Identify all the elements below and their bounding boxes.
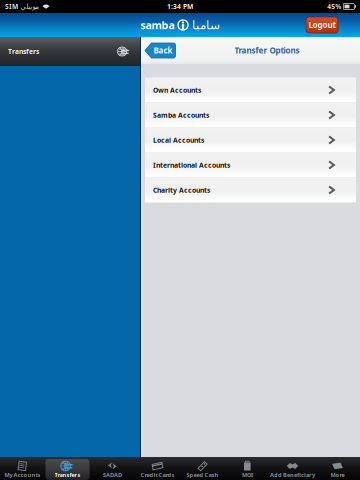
staticText: Transfers — [54, 471, 80, 478]
button[interactable]: MOI — [225, 457, 270, 480]
button[interactable]: Samba Accounts — [145, 102, 356, 127]
button[interactable]: Add Beneficiary — [270, 457, 315, 480]
staticText: Charity Accounts — [153, 185, 210, 195]
staticText: My Accounts — [4, 471, 40, 478]
staticText: 45% — [327, 2, 341, 11]
button[interactable]: More — [315, 457, 360, 480]
button[interactable]: International Accounts — [145, 152, 356, 177]
staticText: موبيلي — [20, 3, 39, 10]
button[interactable]: Transfers — [45, 457, 90, 480]
button[interactable]: Back — [144, 42, 175, 58]
staticText: Credit Cards — [140, 471, 174, 478]
button[interactable]: Charity Accounts — [145, 177, 356, 202]
staticText: Back — [153, 45, 172, 56]
button[interactable]: Local Accounts — [145, 127, 356, 152]
staticText: More — [330, 471, 344, 478]
staticText: سامبا — [191, 18, 219, 32]
button[interactable]: Credit Cards — [135, 457, 180, 480]
button[interactable]: My Accounts — [0, 457, 45, 480]
button[interactable]: Own Accounts — [145, 77, 356, 102]
staticText: Samba Accounts — [153, 110, 209, 120]
staticText: Transfer Options — [234, 45, 299, 56]
staticText: Speed Cash — [186, 471, 218, 478]
staticText: Own Accounts — [153, 85, 201, 95]
staticText: SIM — [5, 2, 18, 11]
button[interactable]: SADAD — [90, 457, 135, 480]
staticText: Add Beneficiary — [270, 471, 315, 478]
button[interactable]: Transfer settings — [117, 45, 131, 57]
staticText: Logout — [308, 20, 335, 30]
staticText: 1:34 PM — [167, 2, 193, 11]
button[interactable]: Logout — [306, 17, 338, 33]
button[interactable]: Speed Cash — [180, 457, 225, 480]
staticText: samba — [140, 18, 174, 32]
staticText: SADAD — [103, 471, 122, 478]
staticText: MOI — [242, 471, 253, 478]
staticText: International Accounts — [153, 160, 230, 170]
staticText: Local Accounts — [153, 135, 204, 145]
staticText: Transfers — [8, 47, 39, 56]
